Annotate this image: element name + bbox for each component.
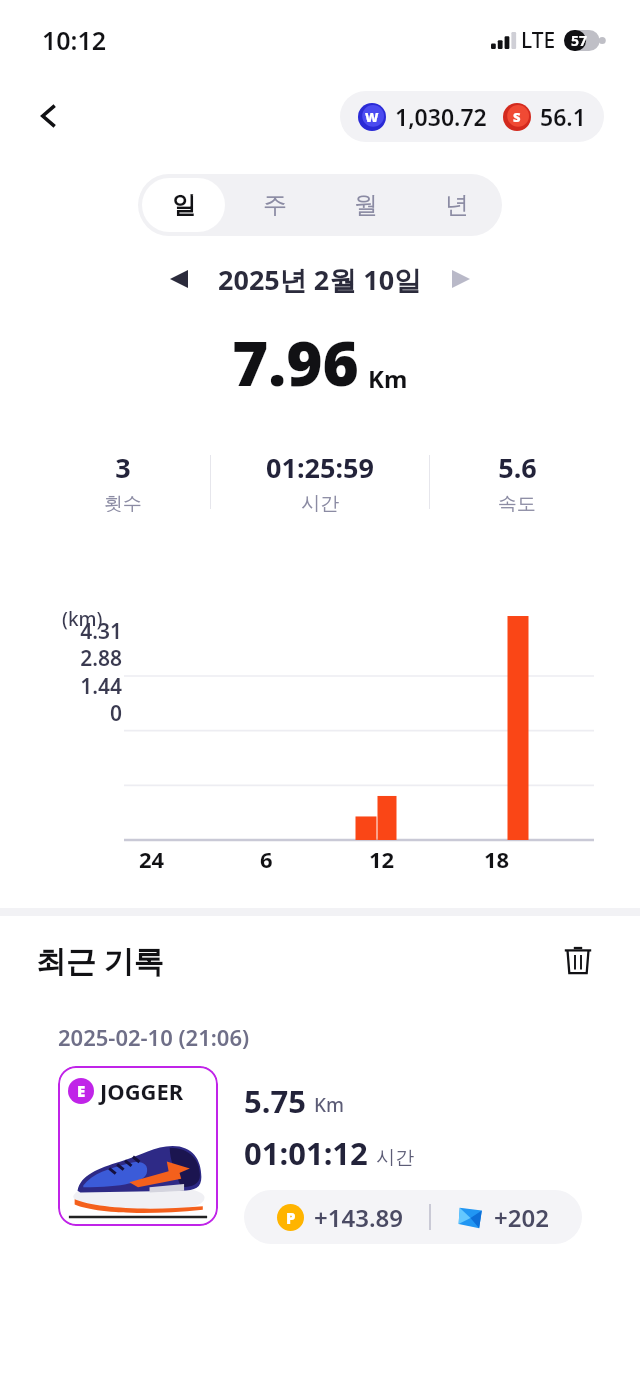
button[interactable]: Back — [24, 90, 76, 142]
staticText: 7.96 — [232, 320, 359, 404]
button[interactable]: Next day — [438, 256, 484, 302]
staticText: 0 — [36, 699, 122, 728]
staticText: 5.75 — [244, 1080, 306, 1122]
staticText: 57 — [571, 31, 588, 50]
staticText: 시간 — [301, 492, 339, 516]
staticText: P — [286, 1208, 296, 1228]
staticText: 시간 — [376, 1146, 414, 1170]
staticText: 24 — [139, 844, 165, 874]
button[interactable]: 일 — [142, 178, 225, 232]
staticText: +202 — [494, 1201, 549, 1234]
staticText: 4.31 — [36, 617, 122, 646]
staticText: 3 — [115, 449, 131, 486]
staticText: 최근 기록 — [36, 940, 164, 981]
button[interactable]: P — [244, 1190, 582, 1244]
staticText: 월 — [354, 190, 378, 220]
staticText: 12 — [369, 844, 395, 874]
button[interactable]: 년 — [415, 178, 498, 232]
staticText: S — [513, 108, 521, 126]
staticText: 속도 — [498, 492, 536, 516]
button[interactable]: W — [340, 91, 604, 142]
button[interactable]: 3 — [36, 426, 604, 538]
staticText: 주 — [263, 190, 287, 220]
button[interactable]: Delete records — [552, 934, 604, 986]
staticText: E — [77, 1081, 86, 1101]
staticText: 2025년 2월 10일 — [218, 261, 422, 298]
staticText: JOGGER — [100, 1076, 184, 1106]
staticText: 18 — [484, 844, 510, 874]
staticText: 6 — [260, 844, 273, 874]
staticText: 1,030.72 — [395, 101, 487, 132]
staticText: 5.6 — [498, 449, 537, 486]
staticText: 56.1 — [540, 101, 586, 132]
staticText: 10:12 — [42, 23, 107, 57]
staticText: 01:01:12 — [244, 1132, 368, 1174]
staticText: 2025-02-10 (21:06) — [58, 1022, 250, 1052]
button[interactable]: 2025-02-10 (21:06) — [36, 1004, 604, 1266]
staticText: Km — [314, 1092, 345, 1118]
button[interactable]: 월 — [324, 178, 407, 232]
staticText: 1.44 — [36, 672, 122, 701]
staticText: Km — [368, 362, 408, 395]
staticText: 2.88 — [36, 644, 122, 673]
staticText: (km) — [62, 606, 103, 632]
button[interactable]: JOGGER shoe — [58, 1066, 218, 1226]
button[interactable]: 주 — [233, 178, 316, 232]
staticText: 년 — [445, 190, 469, 220]
staticText: LTE — [521, 26, 556, 55]
staticText: 일 — [172, 190, 196, 220]
staticText: 횟수 — [104, 492, 142, 516]
staticText: +143.89 — [314, 1201, 403, 1234]
staticText: 01:25:59 — [266, 449, 374, 486]
button[interactable]: Previous day — [156, 256, 202, 302]
staticText: W — [365, 108, 379, 126]
